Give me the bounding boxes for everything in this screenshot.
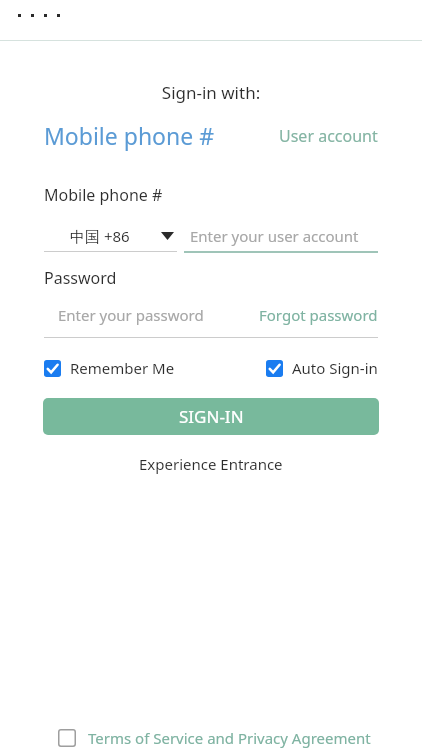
button[interactable]: Enter your user account [184, 220, 378, 251]
staticText: Terms of Service and Privacy Agreement [88, 728, 371, 748]
button[interactable]: User account [279, 125, 378, 147]
button[interactable]: Remember Me [44, 358, 175, 378]
button[interactable]: Forgot password [259, 305, 378, 325]
staticText: User account [279, 125, 378, 147]
staticText: Password [44, 267, 117, 289]
button[interactable]: Auto Sign-in [266, 358, 378, 378]
staticText: Remember Me [70, 358, 175, 378]
button[interactable]: Mobile phone # [44, 120, 215, 151]
staticText: Sign-in with: [0, 81, 422, 104]
button[interactable]: Terms of Service and Privacy Agreement [58, 728, 422, 748]
button[interactable]: SIGN-IN [43, 398, 379, 435]
staticText: Enter your user account [190, 226, 359, 246]
staticText: 中国 +86 [70, 226, 130, 246]
staticText: Mobile phone # [44, 120, 215, 151]
staticText: Experience Entrance [139, 454, 283, 474]
staticText: Forgot password [259, 305, 378, 325]
staticText: Enter your password [58, 305, 204, 325]
staticText: Mobile phone # [44, 184, 163, 206]
staticText: Auto Sign-in [292, 358, 378, 378]
staticText: SIGN-IN [179, 405, 244, 428]
button[interactable]: Enter your password [44, 301, 259, 329]
button[interactable]: 中国 +86 [44, 220, 177, 251]
button[interactable]: Experience Entrance [135, 450, 287, 478]
